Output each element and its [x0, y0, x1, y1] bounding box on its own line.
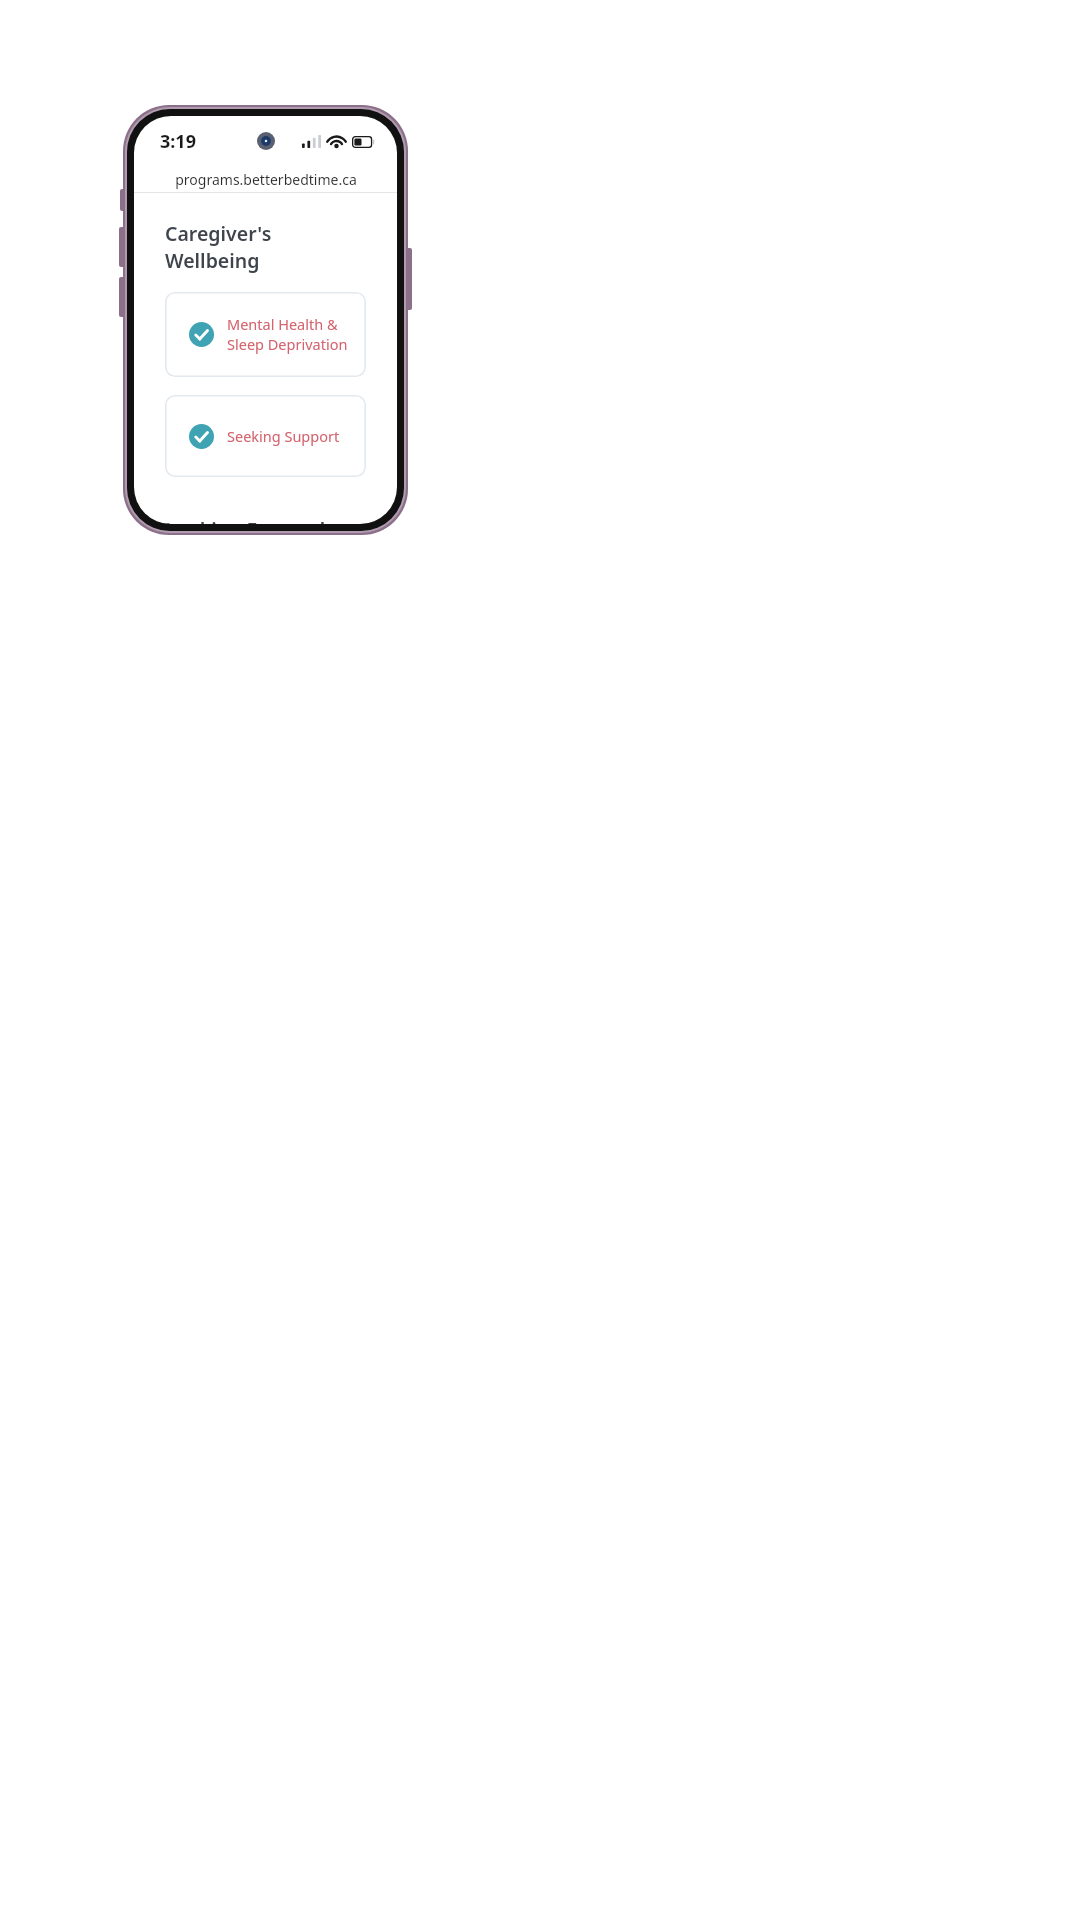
button[interactable]: Mental Health & Sleep Deprivation [165, 292, 366, 377]
staticText: programs.betterbedtime.ca [175, 170, 357, 189]
staticText: 3:19 [160, 129, 196, 154]
staticText: Caregiver's Wellbeing [165, 220, 366, 274]
staticText: Mental Health & Sleep Deprivation [227, 314, 350, 355]
staticText: Seeking Support [227, 426, 340, 446]
button[interactable]: programs.betterbedtime.ca [134, 166, 397, 192]
button[interactable]: Seeking Support [165, 395, 366, 477]
staticText: Looking Forward [165, 516, 326, 524]
